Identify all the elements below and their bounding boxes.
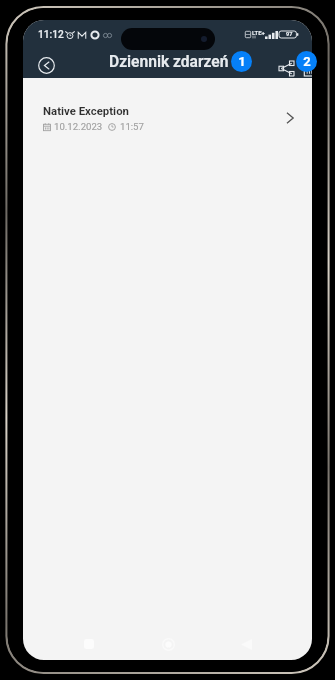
button[interactable]: Delete xyxy=(297,56,312,80)
staticText: Dziennik zdarzeń xyxy=(109,53,229,71)
button[interactable]: Share xyxy=(274,56,298,80)
staticText: Native Exception xyxy=(43,104,129,117)
staticText: 2 xyxy=(303,54,311,69)
staticText: 11:57 xyxy=(120,121,144,132)
staticText: 1 xyxy=(238,54,246,69)
staticText: 11:12 xyxy=(38,29,64,41)
button[interactable]: Native Exception xyxy=(23,78,312,157)
staticText: LTE+ xyxy=(252,29,265,36)
staticText: 97 xyxy=(286,31,293,38)
staticText: 10.12.2023 xyxy=(54,121,103,132)
button[interactable]: Back xyxy=(34,53,59,78)
